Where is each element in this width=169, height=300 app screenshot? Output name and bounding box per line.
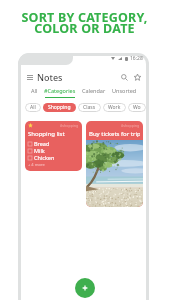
staticText: Unsorted	[112, 87, 137, 94]
staticText: Bread	[34, 140, 50, 147]
staticText: COLOR OR DATE	[34, 20, 135, 37]
button[interactable]: Add note	[75, 278, 95, 298]
staticText: Shopping	[48, 104, 71, 111]
staticText: Workou	[133, 104, 141, 111]
staticText: All	[30, 104, 36, 111]
staticText: Chicken	[34, 154, 55, 161]
staticText: SORT BY CATEGORY,	[21, 9, 148, 26]
button[interactable]: Menu	[24, 72, 35, 83]
staticText: Shopping list	[28, 130, 65, 138]
button[interactable]: #shopping	[25, 121, 82, 171]
staticText: Milk	[34, 147, 45, 154]
button[interactable]: All	[28, 87, 41, 94]
staticText: #Categories	[44, 87, 76, 94]
staticText: Work	[108, 104, 121, 111]
staticText: + 4 more	[28, 162, 45, 167]
button[interactable]: Unsorted	[109, 87, 140, 94]
button[interactable]: #shopping	[86, 121, 143, 207]
button[interactable]: Workou	[128, 103, 146, 112]
button[interactable]: Calendar	[79, 87, 109, 94]
staticText: Calendar	[82, 87, 106, 94]
staticText: #shopping	[121, 123, 140, 128]
button[interactable]: All	[25, 103, 41, 112]
staticText: #shopping	[60, 123, 79, 128]
button[interactable]: Shopping	[43, 103, 76, 112]
button[interactable]: Work	[103, 103, 126, 112]
button[interactable]: Favorites	[131, 71, 144, 84]
staticText: 16:28	[130, 55, 143, 62]
staticText: Class	[83, 104, 96, 111]
staticText: Notes	[37, 71, 63, 83]
staticText: All	[31, 87, 38, 94]
button[interactable]: Class	[78, 103, 101, 112]
button[interactable]: #Categories	[41, 87, 79, 98]
button[interactable]: Search	[118, 71, 131, 84]
staticText: Buy tickets for trip	[89, 130, 140, 138]
